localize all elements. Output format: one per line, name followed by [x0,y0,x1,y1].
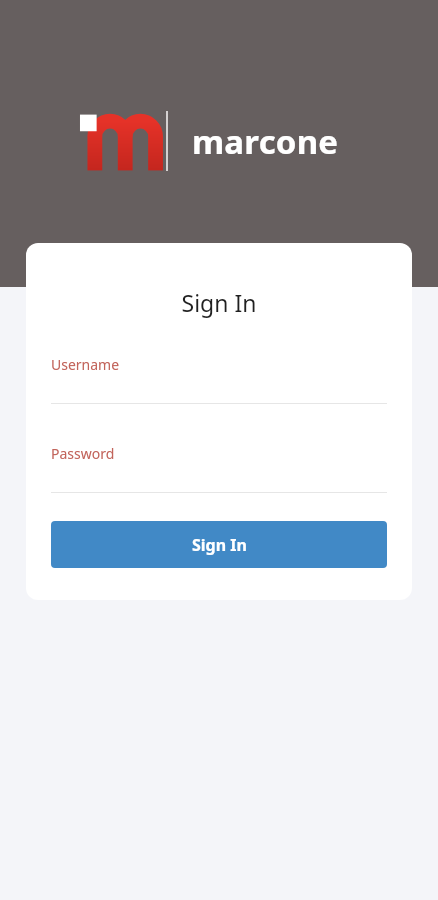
staticText: Password [51,444,115,463]
staticText: Username [51,355,120,374]
other: Marcone logo [76,111,150,171]
staticText: Sign In [192,534,247,556]
button[interactable]: Password [51,444,387,493]
staticText: marcone [192,119,339,164]
staticText: Sign In [26,287,412,318]
button[interactable]: Sign In [51,521,387,568]
button[interactable]: Username [51,355,387,404]
